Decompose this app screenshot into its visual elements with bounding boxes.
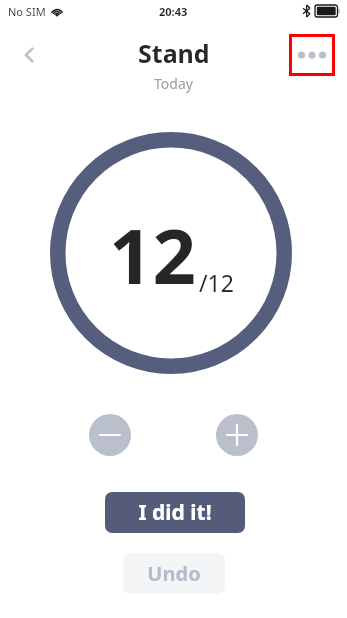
staticText: Stand [138,36,210,70]
button[interactable]: I did it! [105,492,245,533]
button[interactable]: Undo [123,553,225,594]
staticText: Undo [147,560,201,587]
staticText: Today [154,74,193,93]
staticText: I did it! [138,498,212,527]
staticText: 20:43 [159,4,188,19]
staticText: /12 [199,267,234,298]
staticText: No SIM [8,4,46,19]
button[interactable]: Increase [216,414,258,456]
button[interactable]: More options [289,34,335,76]
staticText: 12 [109,203,196,307]
button[interactable]: Decrease [89,414,131,456]
button[interactable]: Back [10,35,50,75]
